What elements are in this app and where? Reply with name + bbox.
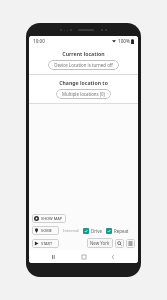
staticText: Device Location is turned off — [54, 62, 113, 68]
button[interactable]: Repeat — [106, 227, 129, 235]
button[interactable]: START — [32, 239, 59, 248]
staticText: 100% — [118, 38, 130, 44]
button[interactable]: Device Location is turned off — [48, 60, 119, 70]
button[interactable]: SOME — [32, 226, 59, 235]
button[interactable]: SHOW MAP — [32, 214, 66, 223]
button[interactable]: Home — [79, 252, 89, 262]
staticText: Current location — [62, 50, 105, 57]
button[interactable]: Search — [115, 239, 124, 248]
button[interactable]: Back — [108, 252, 118, 262]
staticText: New York — [90, 240, 110, 246]
staticText: Change location to — [59, 79, 108, 86]
button[interactable]: List — [126, 239, 135, 248]
button[interactable]: Multiple locations (0) — [56, 89, 111, 99]
staticText: Drive — [91, 228, 102, 234]
staticText: SHOW MAP — [41, 216, 63, 221]
button[interactable]: Recents — [49, 252, 59, 262]
staticText: Multiple locations (0) — [62, 91, 105, 97]
staticText: SOME — [41, 228, 52, 233]
button[interactable]: Drive — [83, 227, 102, 235]
staticText: 10:00 — [33, 38, 45, 44]
button[interactable]: New York — [87, 238, 113, 248]
staticText: Internal — [63, 228, 79, 234]
staticText: Repeat — [114, 228, 129, 234]
staticText: START — [41, 241, 53, 246]
